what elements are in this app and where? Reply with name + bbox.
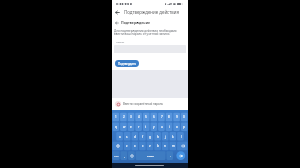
staticText: . [170,154,171,158]
staticText: Пароль [116,41,125,44]
staticText: m [172,144,175,148]
button[interactable]: u [158,122,166,132]
button[interactable]: t [142,122,150,132]
button[interactable]: j [161,132,169,142]
button[interactable]: e [127,122,135,132]
staticText: 3 [130,115,132,119]
button[interactable]: Ввести сохранённый пароль [112,98,188,110]
staticText: 9 [176,115,178,119]
staticText: i [169,125,170,129]
button[interactable]: k [169,132,177,142]
button[interactable]: w [120,122,128,132]
button[interactable]: 9 [173,112,181,122]
staticText: Подтверждение [121,20,151,25]
staticText: Подтверждение действия [124,9,180,15]
button[interactable]: Back [112,7,188,17]
button[interactable]: m [169,141,177,151]
staticText: g [149,135,151,139]
button[interactable]: c [139,141,147,151]
staticText: q [115,125,117,129]
staticText: j [165,135,166,139]
staticText: ?123 [114,155,119,158]
button[interactable]: p [180,122,188,132]
staticText: 2 [123,115,125,119]
staticText: h [157,135,159,139]
button[interactable]: English [135,151,166,161]
staticText: p [183,125,185,129]
staticText: x [134,144,136,148]
button[interactable]: 4 [135,112,143,122]
staticText: 5 [145,115,147,119]
staticText: e [130,125,132,129]
button[interactable]: ?123 [112,151,120,161]
button[interactable]: Emoji [128,151,136,161]
staticText: v [149,144,151,148]
staticText: Подтвердить [118,62,137,66]
button[interactable]: h [154,132,162,142]
button[interactable]: y [150,122,158,132]
staticText: f [142,135,144,139]
button[interactable]: Shift [112,141,123,151]
button[interactable]: . [166,151,174,161]
staticText: b [157,144,159,148]
button[interactable]: 5 [142,112,150,122]
staticText: y [153,125,155,129]
staticText: r [138,125,140,129]
staticText: n [164,144,166,148]
button[interactable]: Подтвердить [115,60,139,67]
button[interactable]: 0 [180,112,188,122]
button[interactable]: g [146,132,154,142]
staticText: s [126,135,128,139]
staticText: 6 [153,115,155,119]
button[interactable]: 6 [150,112,158,122]
staticText: ввести ваш пароль от учетной записи. [114,32,171,36]
button[interactable]: Backspace [177,141,188,151]
button[interactable]: s [123,132,131,142]
staticText: Для подтверждения действия необходимо [114,29,177,33]
staticText: o [176,125,178,129]
other: Back [115,10,120,15]
button[interactable]: 3 [127,112,135,122]
staticText: k [172,135,174,139]
button[interactable]: r [135,122,143,132]
staticText: Ввести сохранённый пароль [123,102,164,106]
staticText: l [181,135,182,139]
button[interactable]: v [146,141,154,151]
button[interactable]: 1 [112,112,120,122]
staticText: 1 [115,115,117,119]
button[interactable]: l [177,132,185,142]
button[interactable]: b [154,141,162,151]
staticText: z [126,144,128,148]
button[interactable]: o [173,122,181,132]
staticText: 7 [161,115,163,119]
button[interactable]: x [131,141,139,151]
button[interactable]: 7 [158,112,166,122]
button[interactable]: , [120,151,128,161]
button[interactable]: a [116,132,124,142]
staticText: a [119,135,121,139]
button[interactable]: q [112,122,120,132]
other: Back [115,21,119,25]
staticText: w [123,125,126,129]
staticText: t [145,125,147,129]
staticText: u [161,125,163,129]
button[interactable]: i [165,122,173,132]
button[interactable]: n [161,141,169,151]
button[interactable]: Enter [174,151,188,161]
staticText: d [134,135,136,139]
staticText: 8 [168,115,170,119]
staticText: c [142,144,144,148]
button[interactable]: 8 [165,112,173,122]
button[interactable]: d [131,132,139,142]
staticText: 0 [183,115,185,119]
staticText: , [124,154,125,158]
button[interactable]: z [123,141,131,151]
button[interactable]: 2 [120,112,128,122]
button[interactable]: f [139,132,147,142]
staticText: 4 [138,115,140,119]
staticText: English [147,155,155,158]
